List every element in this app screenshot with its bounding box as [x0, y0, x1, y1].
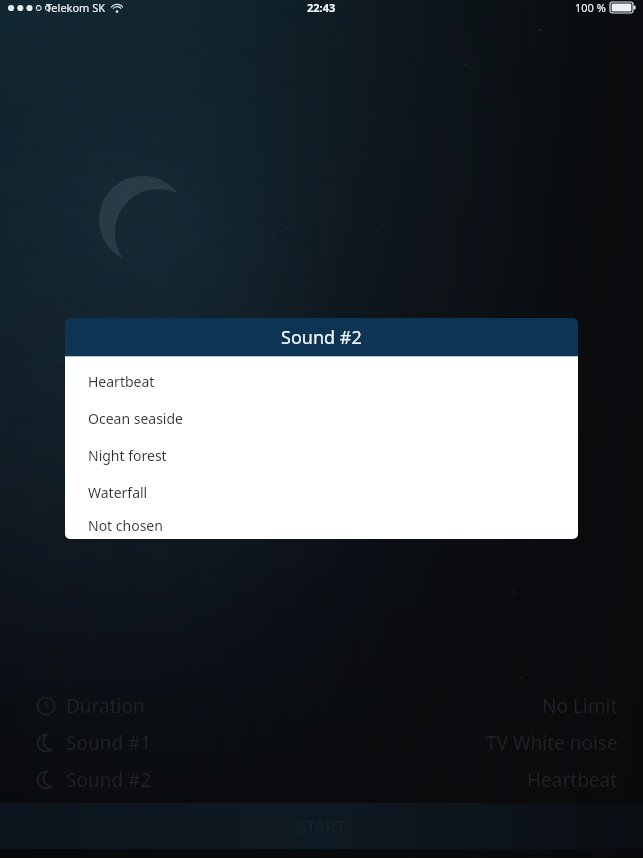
staticText: TV White noise — [486, 730, 618, 756]
staticText: 100 % — [575, 0, 606, 15]
button[interactable]: START — [0, 803, 643, 849]
button[interactable]: Not chosen — [65, 511, 578, 539]
staticText: Heartbeat — [88, 372, 155, 391]
staticText: Sound #1 — [66, 730, 152, 756]
staticText: Night forest — [88, 446, 167, 465]
staticText: Telekom SK — [46, 0, 106, 15]
button[interactable]: Sound #1 — [16, 724, 627, 761]
staticText: 22:43 — [307, 0, 336, 15]
staticText: Heartbeat — [527, 767, 618, 793]
staticText: Not chosen — [88, 516, 163, 535]
staticText: Waterfall — [88, 483, 148, 502]
button[interactable]: Sound #2 — [16, 761, 627, 798]
button[interactable]: Heartbeat — [65, 363, 578, 400]
button[interactable]: Duration — [16, 687, 627, 724]
staticText: No Limit — [542, 693, 618, 719]
staticText: Duration — [66, 693, 145, 719]
staticText: Sound #2 — [66, 767, 152, 793]
button[interactable]: Waterfall — [65, 474, 578, 511]
button[interactable]: Ocean seaside — [65, 400, 578, 437]
staticText: Sound #2 — [281, 325, 362, 350]
staticText: Ocean seaside — [88, 409, 183, 428]
button[interactable]: Night forest — [65, 437, 578, 474]
